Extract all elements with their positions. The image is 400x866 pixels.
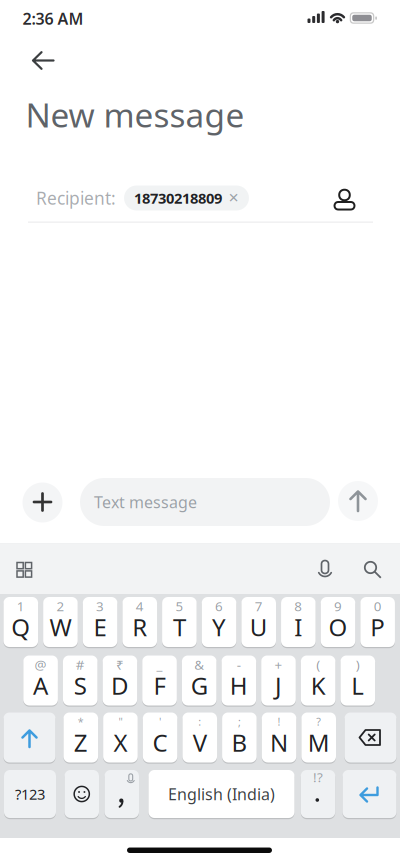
staticText: K (311, 670, 326, 701)
staticText: J (275, 670, 282, 701)
button[interactable]: 0 (360, 595, 395, 648)
button[interactable]: 5 (162, 595, 197, 648)
staticText: 3 (96, 597, 104, 615)
staticText: E (94, 611, 107, 643)
staticText: New message (25, 92, 244, 137)
staticText: 4 (136, 597, 144, 615)
button[interactable] (104, 768, 139, 819)
staticText: O (328, 611, 347, 643)
staticText: 6 (215, 597, 223, 615)
button[interactable] (9, 554, 39, 584)
staticText: ) (356, 656, 360, 673)
button[interactable] (22, 482, 62, 522)
button[interactable]: 4 (122, 595, 157, 648)
button[interactable]: ! (262, 711, 296, 764)
staticText: 1 (17, 597, 25, 615)
staticText: A (33, 670, 48, 701)
button[interactable] (3, 711, 55, 764)
button[interactable]: 1 (3, 595, 38, 648)
staticText: S (74, 670, 87, 701)
staticText: C (153, 727, 168, 758)
staticText: @ (35, 656, 47, 673)
staticText: " (118, 714, 122, 729)
staticText: N (270, 727, 288, 758)
staticText: 2:36 AM (22, 8, 83, 29)
button[interactable]: ' (143, 711, 177, 764)
button[interactable]: Text message (80, 478, 330, 526)
staticText: G (191, 670, 208, 701)
staticText: I (294, 611, 302, 643)
button[interactable]: # (63, 654, 98, 707)
button[interactable]: & (182, 654, 216, 707)
staticText: ; (238, 714, 241, 729)
button[interactable] (354, 553, 384, 583)
button[interactable] (64, 768, 99, 819)
button[interactable]: @ (23, 654, 58, 707)
staticText: # (76, 656, 85, 673)
staticText: ? (316, 714, 321, 729)
staticText: _ (157, 656, 163, 673)
button[interactable]: * (63, 711, 98, 764)
button[interactable]: ; (222, 711, 257, 764)
staticText: M (308, 727, 330, 758)
staticText: 18730218809 (134, 188, 222, 208)
button[interactable]: : (182, 711, 217, 764)
staticText: 8 (294, 597, 302, 615)
staticText: R (132, 611, 147, 643)
button[interactable]: 8 (281, 595, 316, 648)
staticText: L (351, 670, 364, 701)
staticText: ₹ (116, 656, 124, 673)
button[interactable]: " (103, 711, 138, 764)
staticText: ✕ (228, 190, 239, 205)
staticText: English (India) (168, 783, 275, 805)
staticText: ( (316, 656, 320, 673)
button[interactable] (342, 768, 396, 819)
staticText: - (237, 656, 241, 673)
staticText: + (274, 656, 282, 673)
staticText: X (113, 727, 127, 758)
button[interactable]: ( (301, 654, 335, 707)
button[interactable]: + (261, 654, 296, 707)
button[interactable]: 6 (202, 595, 236, 648)
button[interactable] (324, 179, 364, 219)
button[interactable]: - (222, 654, 256, 707)
staticText: ?123 (15, 784, 45, 804)
staticText: 7 (255, 597, 263, 615)
staticText: W (49, 611, 71, 643)
button[interactable]: _ (142, 654, 177, 707)
button[interactable]: 18730218809 (124, 185, 249, 210)
staticText: ! (278, 714, 281, 729)
button[interactable] (310, 553, 340, 583)
button[interactable]: ?123 (4, 768, 56, 819)
button[interactable]: ₹ (103, 654, 137, 707)
staticText: P (370, 611, 385, 643)
staticText: U (250, 611, 268, 643)
button[interactable]: English (India) (148, 768, 294, 819)
staticText: H (230, 670, 248, 701)
staticText: & (194, 656, 204, 673)
staticText: : (198, 714, 201, 729)
staticText: ' (159, 714, 161, 729)
staticText: Recipient: (36, 186, 116, 209)
button[interactable]: 7 (241, 595, 276, 648)
staticText: F (154, 670, 166, 701)
button[interactable]: ) (340, 654, 375, 707)
button[interactable]: !? (301, 768, 335, 819)
button[interactable]: 3 (83, 595, 117, 648)
staticText: 5 (175, 597, 183, 615)
staticText: !? (313, 768, 323, 786)
staticText: 9 (334, 597, 342, 615)
staticText: Text message (94, 491, 197, 513)
staticText: * (78, 714, 84, 729)
staticText: Q (11, 611, 30, 643)
button[interactable] (338, 481, 378, 521)
staticText: Y (212, 611, 226, 643)
button[interactable]: ? (301, 711, 336, 764)
button[interactable] (22, 45, 64, 76)
button[interactable] (344, 711, 396, 764)
staticText: V (193, 727, 207, 758)
button[interactable]: 9 (321, 595, 355, 648)
staticText: 0 (374, 597, 382, 615)
staticText: 2 (56, 597, 64, 615)
button[interactable]: 2 (43, 595, 78, 648)
